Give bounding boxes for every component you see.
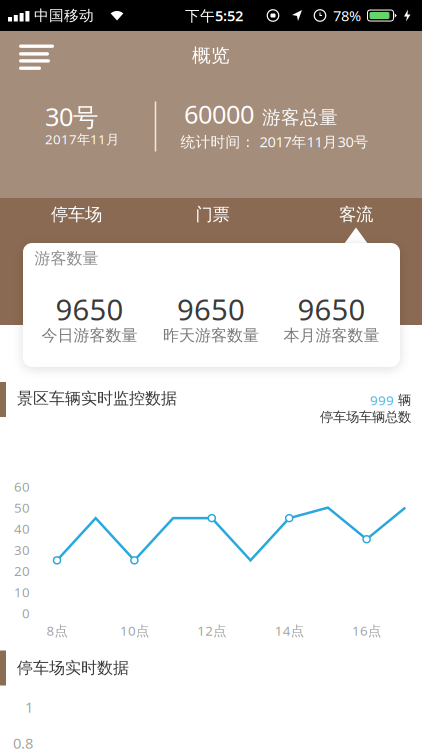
staticText: 60000 [184, 97, 254, 131]
button[interactable]: 门票 [152, 198, 272, 231]
staticText: 停车场 [51, 204, 102, 225]
staticText: 14点 [275, 622, 304, 639]
staticText: 40 [14, 520, 30, 537]
staticText: 概览 [192, 44, 230, 67]
staticText: 30 [14, 541, 30, 559]
staticText: 10点 [120, 622, 149, 639]
staticText: 999 [370, 391, 394, 409]
staticText: 78% [333, 6, 361, 25]
staticText: 16点 [352, 622, 381, 639]
staticText: 9650 [177, 289, 245, 328]
staticText: 0.8 [13, 733, 33, 750]
staticText: 下午5:52 [185, 6, 243, 25]
staticText: 景区车辆实时监控数据 [17, 389, 177, 408]
button[interactable]: 客流 [296, 198, 416, 231]
staticText: 统计时间： 2017年11月30号 [180, 132, 368, 151]
staticText: 昨天游客数量 [163, 326, 259, 345]
staticText: 停车场实时数据 [17, 658, 129, 678]
staticText: 2017年11月 [45, 130, 119, 148]
staticText: 20 [14, 562, 30, 580]
staticText: 9650 [55, 289, 123, 328]
staticText: 客流 [339, 204, 373, 225]
staticText: 停车场车辆总数 [320, 409, 411, 425]
staticText: 30号 [45, 100, 98, 133]
staticText: 9650 [297, 289, 365, 328]
staticText: 10 [14, 583, 30, 601]
staticText: 12点 [197, 622, 226, 639]
staticText: 60 [14, 478, 30, 495]
staticText: 游客总量 [262, 106, 338, 129]
staticText: 50 [14, 499, 30, 516]
button[interactable]: 停车场 [16, 198, 136, 231]
staticText: 游客数量 [34, 249, 98, 268]
staticText: 今日游客数量 [41, 326, 137, 345]
staticText: 8点 [46, 622, 67, 639]
staticText: 中国移动 [34, 6, 94, 24]
staticText: 辆 [398, 392, 411, 408]
staticText: 门票 [195, 204, 229, 225]
button[interactable] [19, 44, 55, 70]
staticText: 1 [25, 697, 33, 717]
staticText: 0 [22, 604, 30, 622]
staticText: 本月游客数量 [283, 326, 379, 345]
